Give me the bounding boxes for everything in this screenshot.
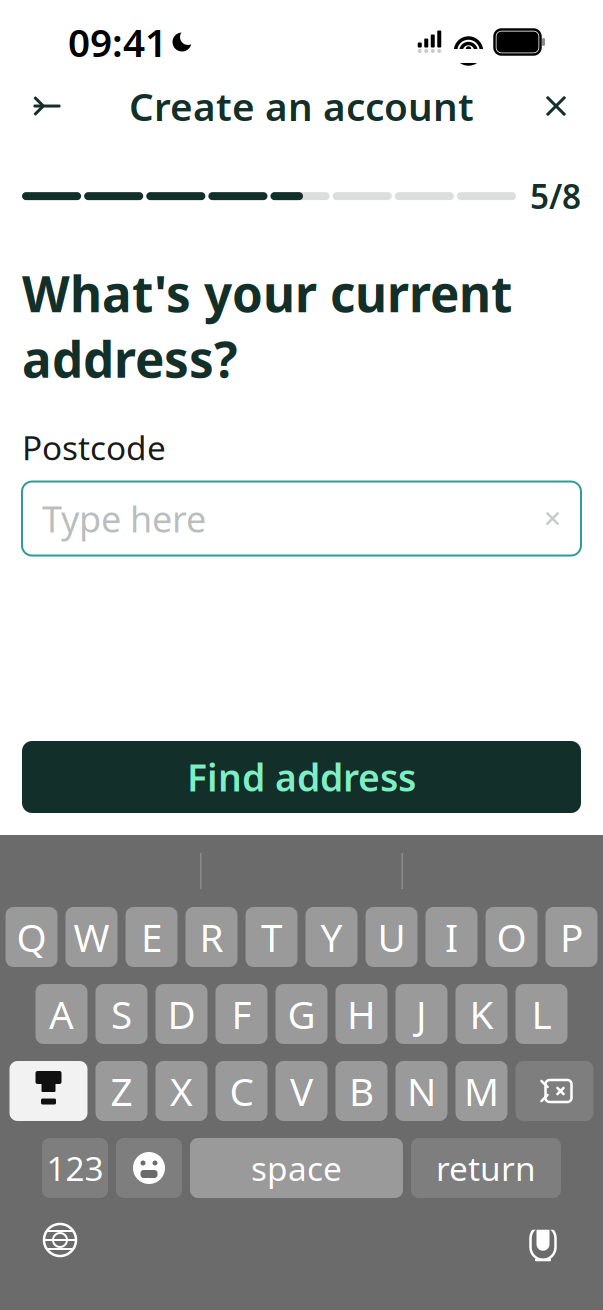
button[interactable]: R [185,907,237,967]
staticText: Postcode [22,425,166,470]
staticText: F [231,988,251,1040]
button[interactable]: H [335,984,387,1044]
staticText: return [436,1146,536,1190]
staticText: space [251,1146,342,1190]
staticText: R [199,911,223,963]
button[interactable]: W [65,907,117,967]
button[interactable]: O [485,907,537,967]
staticText: What's your current address? [22,260,512,391]
staticText: 09:41 [68,16,167,68]
button[interactable]: Z [95,1061,147,1121]
staticText: Create an account [129,80,474,132]
staticText: K [469,988,493,1040]
button[interactable]: X [155,1061,207,1121]
button[interactable]: K [455,984,507,1044]
staticText: T [261,911,282,963]
staticText: M [464,1065,499,1117]
staticText: Y [320,911,342,963]
button[interactable]: T [245,907,297,967]
button[interactable]: Close [529,79,583,133]
button[interactable]: return [411,1138,561,1198]
staticText: J [416,988,427,1040]
staticText: H [347,988,376,1040]
staticText: Find address [187,752,416,802]
button[interactable]: J [395,984,447,1044]
staticText: S [111,988,132,1040]
button[interactable]: Shift [9,1061,87,1121]
button[interactable]: Y [305,907,357,967]
staticText: 5/8 [530,174,581,218]
button[interactable]: D [155,984,207,1044]
button[interactable]: Emoji [116,1138,182,1198]
button[interactable]: Back [20,79,74,133]
button[interactable]: M [455,1061,507,1121]
button[interactable]: A [35,984,87,1044]
button[interactable]: Delete [515,1061,593,1121]
button[interactable]: I [425,907,477,967]
staticText: O [496,911,526,963]
staticText: I [445,911,458,963]
button[interactable]: U [365,907,417,967]
staticText: L [531,988,551,1040]
staticText: P [560,911,583,963]
button[interactable]: Find address [22,741,581,813]
staticText: D [167,988,195,1040]
button[interactable]: Q [5,907,57,967]
button[interactable]: Type here [22,482,581,556]
staticText: C [229,1065,253,1117]
staticText: W [73,911,109,963]
button[interactable]: B [335,1061,387,1121]
staticText: G [287,988,315,1040]
staticText: Q [16,911,46,963]
button[interactable]: space [190,1138,403,1198]
staticText: V [290,1065,313,1117]
staticText: E [141,911,162,963]
staticText: B [349,1065,374,1117]
staticText: Type here [42,495,206,542]
staticText: Z [110,1065,132,1117]
button[interactable]: F [215,984,267,1044]
button[interactable]: 123 [42,1138,108,1198]
button[interactable]: N [395,1061,447,1121]
button[interactable]: Dictate [515,1212,571,1268]
staticText: X [170,1065,193,1117]
button[interactable]: S [95,984,147,1044]
button[interactable]: Next keyboard [32,1212,88,1268]
staticText: N [407,1065,436,1117]
staticText: U [377,911,405,963]
button[interactable]: P [545,907,597,967]
button[interactable]: C [215,1061,267,1121]
button[interactable]: L [515,984,567,1044]
staticText: 123 [46,1146,103,1190]
button[interactable]: V [275,1061,327,1121]
button[interactable]: E [125,907,177,967]
button[interactable]: G [275,984,327,1044]
staticText: A [49,988,74,1040]
